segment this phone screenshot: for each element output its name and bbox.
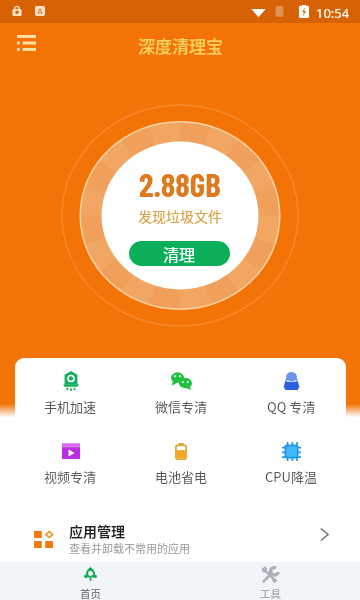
staticText: 查看并卸载不常用的应用 [69, 540, 190, 556]
staticText: 首页 [80, 586, 101, 600]
staticText: 2.88GB [139, 164, 221, 204]
staticText: 微信专清 [155, 397, 208, 416]
button[interactable]: 清理 [129, 241, 230, 266]
staticText: 清理 [163, 242, 196, 265]
button[interactable]: 电池省电 [126, 428, 236, 499]
staticText: 工具 [260, 586, 281, 600]
staticText: QQ 专清 [267, 397, 316, 416]
staticText: 深度清理宝 [138, 33, 223, 58]
button[interactable]: 视频专清 [15, 428, 126, 499]
button[interactable]: 首页 [0, 562, 180, 600]
staticText: CPU降温 [265, 467, 317, 486]
button[interactable]: 手机加速 [15, 358, 126, 428]
staticText: 发现垃圾文件 [138, 206, 222, 226]
staticText: 电池省电 [155, 467, 208, 486]
button[interactable]: 应用管理 [15, 507, 346, 561]
button[interactable]: 工具 [180, 562, 360, 600]
staticText: 手机加速 [44, 397, 97, 416]
button[interactable]: 微信专清 [126, 358, 236, 428]
button[interactable]: Menu [6, 29, 46, 57]
button[interactable]: QQ 专清 [236, 358, 346, 428]
staticText: 视频专清 [44, 467, 97, 486]
button[interactable]: CPU降温 [236, 428, 346, 499]
staticText: 应用管理 [69, 521, 125, 541]
staticText: 10:54 [316, 4, 350, 22]
